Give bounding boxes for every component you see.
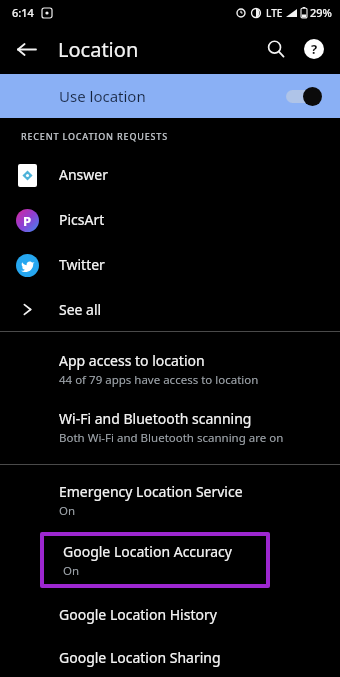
button[interactable]: Use location [0,74,340,118]
staticText: Wi-Fi and Bluetooth scanning [59,409,252,428]
button[interactable]: P [0,197,340,242]
button[interactable]: Search [257,30,295,68]
staticText: Google Location History [59,605,217,624]
button[interactable]: Help [295,30,333,68]
button[interactable]: Google Location Sharing [0,637,340,677]
staticText: Both Wi-Fi and Bluetooth scanning are on [59,430,284,446]
button[interactable]: Twitter [0,242,340,287]
staticText: 29% [310,5,332,20]
staticText: LTE [266,6,283,20]
staticText: PicsArt [59,210,105,229]
staticText: Use location [59,86,286,106]
button[interactable]: App access to location [0,340,340,398]
staticText: Google Location Sharing [59,648,221,667]
staticText: Emergency Location Service [59,482,243,501]
button[interactable]: Emergency Location Service [0,471,340,529]
staticText: Location [58,36,139,63]
staticText: See all [59,300,102,319]
button[interactable]: Answer [0,152,340,197]
button[interactable]: Google Location Accuracy [44,536,266,584]
button[interactable]: Google Location History [0,591,340,637]
staticText: On [63,563,80,579]
button[interactable]: Back [6,29,46,69]
staticText: App access to location [59,351,205,370]
staticText: 44 of 79 apps have access to location [59,372,259,388]
button[interactable]: See all [0,287,340,331]
staticText: P [23,212,32,230]
staticText: Google Location Accuracy [63,542,232,561]
staticText: Answer [59,165,108,184]
staticText: 6:14 [12,5,34,20]
staticText: On [59,503,76,519]
staticText: Twitter [59,255,105,274]
button[interactable]: Wi-Fi and Bluetooth scanning [0,398,340,456]
staticText: ? [311,40,318,58]
staticText: RECENT LOCATION REQUESTS [21,130,168,142]
